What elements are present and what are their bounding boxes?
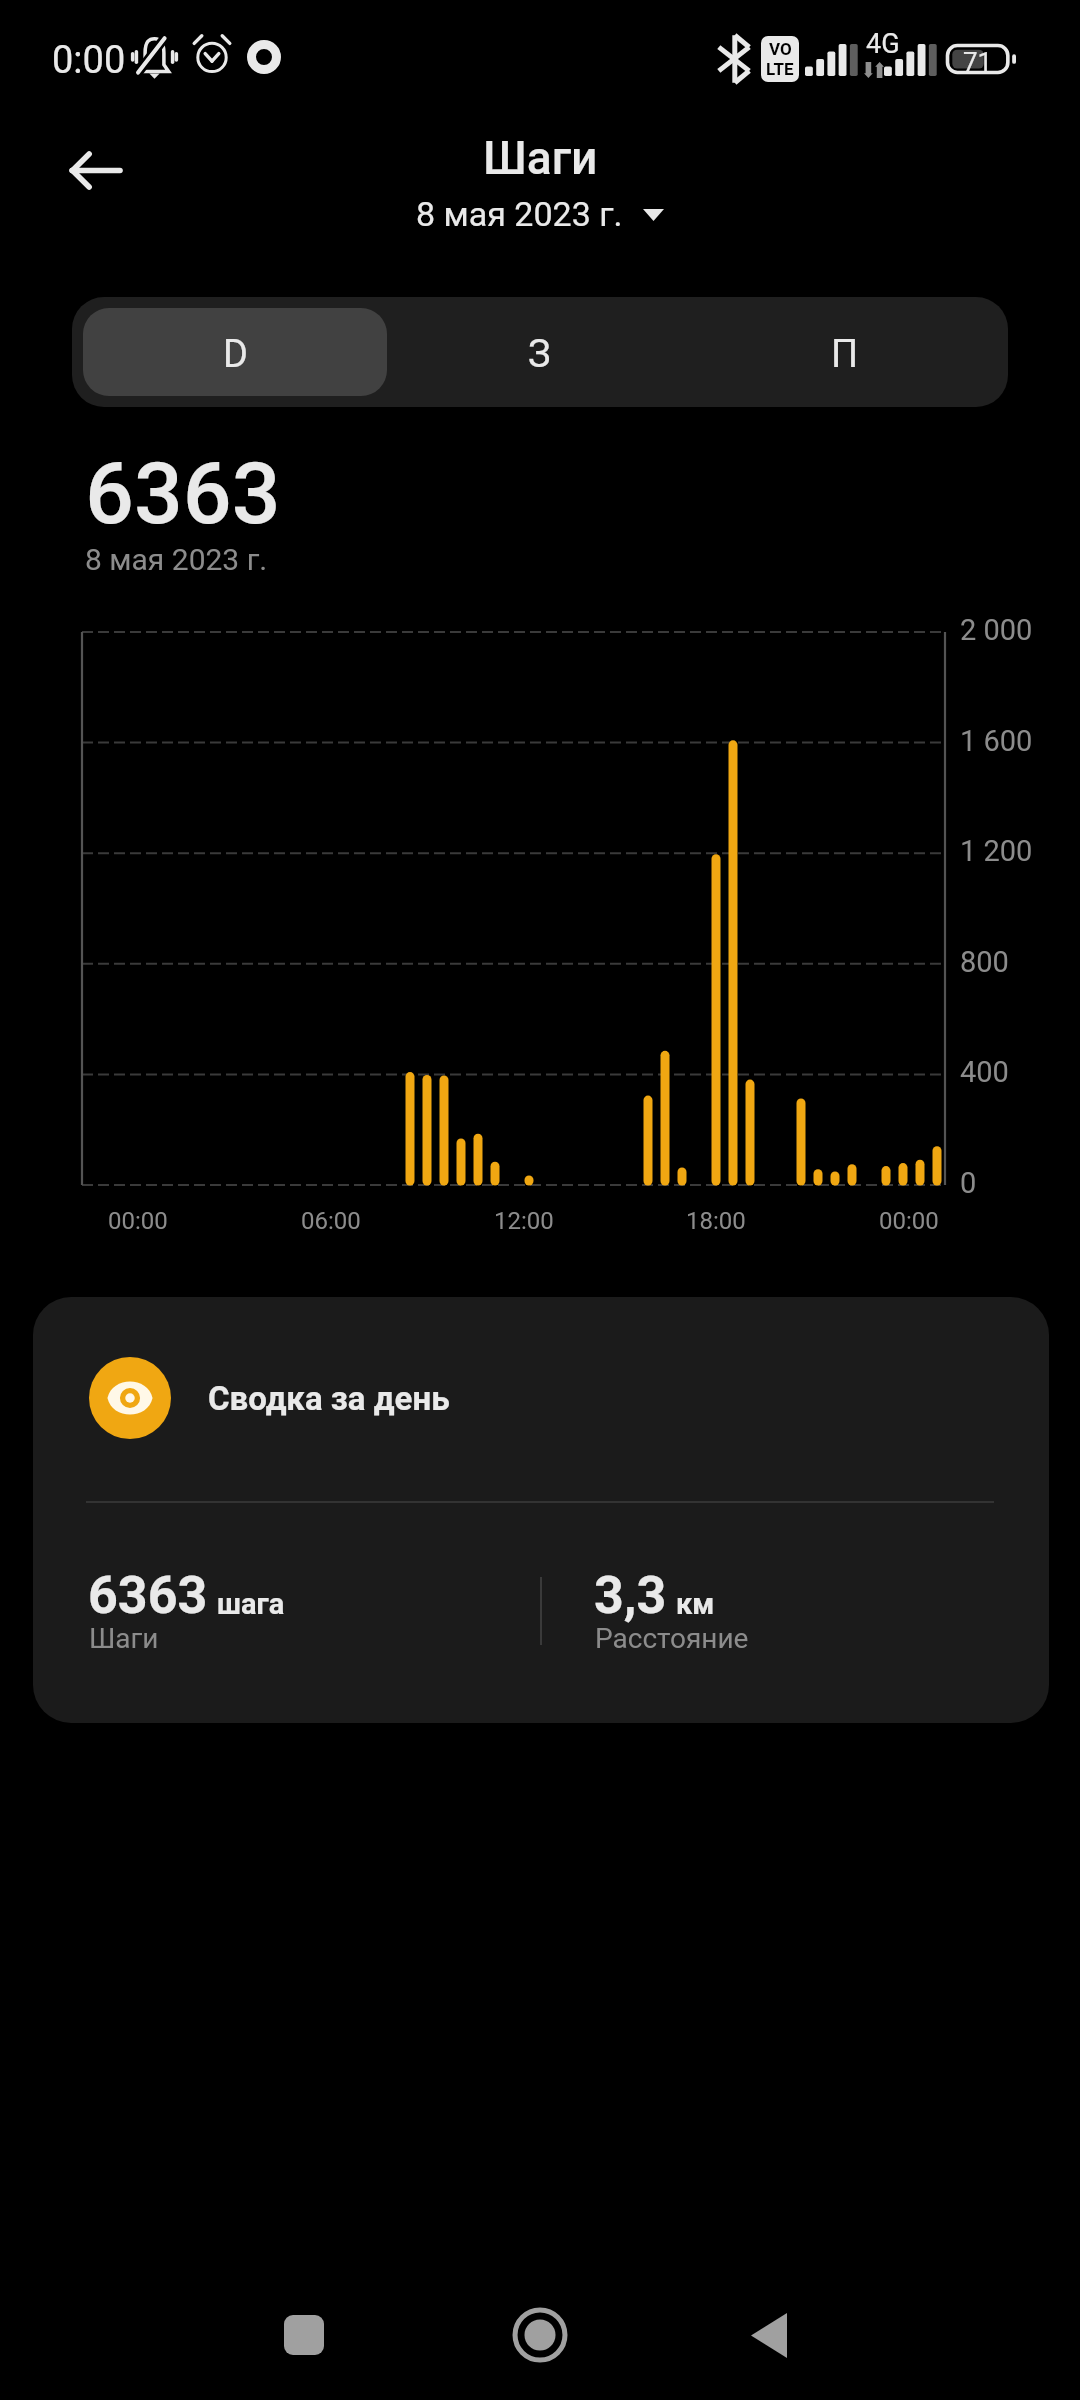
staticText: 71 (963, 47, 993, 77)
staticText: 3,3 (594, 1565, 667, 1626)
staticText: 18:00 (686, 1207, 746, 1235)
button[interactable]: Сводка за день (33, 1297, 1049, 1723)
button[interactable]: Back (55, 130, 135, 210)
staticText: 2 000 (960, 613, 1033, 647)
staticText: км (676, 1587, 715, 1621)
staticText: 00:00 (108, 1207, 168, 1235)
button[interactable]: Choose date: 8 мая 2023 г. (408, 189, 672, 239)
button[interactable]: Recents (229, 2260, 379, 2400)
staticText: шага (217, 1587, 285, 1621)
staticText: 4G (866, 28, 900, 60)
staticText: Сводка за день (208, 1379, 450, 1418)
staticText: 0:00 (52, 38, 126, 83)
staticText: 06:00 (301, 1207, 361, 1235)
staticText: П (831, 332, 859, 377)
staticText: 8 мая 2023 г. (416, 194, 623, 234)
staticText: З (528, 332, 551, 377)
button[interactable]: D (83, 308, 387, 396)
staticText: 8 мая 2023 г. (85, 542, 268, 577)
staticText: 1 200 (960, 834, 1033, 868)
staticText: Шаги (483, 131, 598, 185)
button[interactable]: П (692, 308, 997, 396)
staticText: D (223, 332, 248, 377)
staticText: VO (769, 39, 792, 59)
staticText: LTE (766, 59, 794, 79)
staticText: 0 (960, 1166, 977, 1200)
staticText: 800 (960, 945, 1009, 979)
staticText: Расстояние (595, 1622, 749, 1655)
staticText: 1 600 (960, 724, 1033, 758)
button[interactable]: Back (694, 2260, 844, 2400)
button[interactable]: З (387, 308, 692, 396)
staticText: Шаги (89, 1622, 159, 1655)
staticText: 6363 (88, 1565, 208, 1626)
staticText: 6363 (85, 443, 281, 544)
staticText: 12:00 (494, 1207, 554, 1235)
staticText: 400 (960, 1055, 1009, 1089)
button[interactable]: Home (465, 2260, 615, 2400)
staticText: 00:00 (879, 1207, 939, 1235)
